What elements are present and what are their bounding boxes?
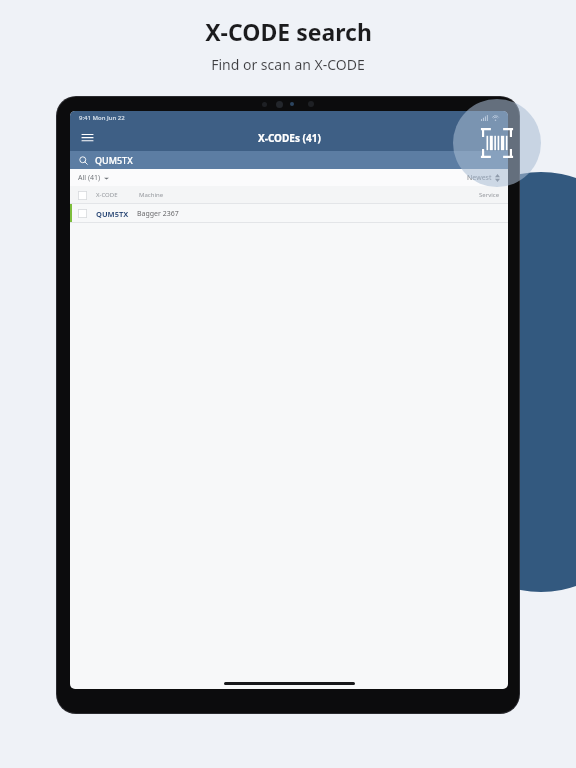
button[interactable] [78, 209, 87, 218]
staticText: QUM5TX [95, 154, 133, 166]
button[interactable]: Open navigation menu [76, 127, 98, 149]
staticText: QUM5TX [96, 209, 129, 219]
staticText: 9:41 Mon Jun 22 [79, 114, 125, 122]
staticText: X-CODE [96, 191, 118, 199]
button[interactable]: Scan barcode [453, 99, 541, 187]
staticText: X-CODE search [205, 16, 372, 47]
button[interactable] [78, 191, 87, 200]
staticText: Machine [139, 191, 164, 199]
staticText: X-CODEs (41) [258, 131, 321, 145]
button[interactable]: Newest [467, 173, 500, 183]
button[interactable]: All (41) [78, 173, 109, 183]
staticText: Bagger 2367 [137, 209, 179, 219]
staticText: All (41) [78, 173, 101, 183]
staticText: Service [479, 191, 500, 199]
button[interactable]: QUM5TX [70, 204, 508, 223]
staticText: Find or scan an X-CODE [211, 55, 365, 74]
button[interactable]: QUM5TX [70, 151, 508, 169]
staticText: Newest [467, 173, 492, 183]
